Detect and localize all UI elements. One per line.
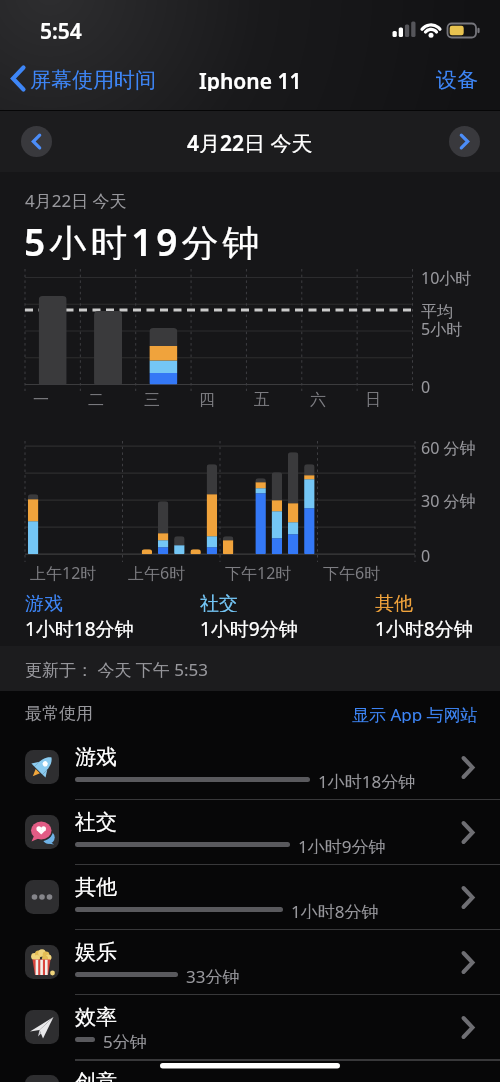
staticText: 5:54 <box>40 17 82 43</box>
staticText: 显示 App 与网站 <box>352 703 478 723</box>
button[interactable]: 游戏 <box>0 735 500 800</box>
staticText: 60 分钟 <box>421 437 476 457</box>
staticText: 其他 <box>75 874 117 898</box>
staticText: 10小时 <box>421 267 472 287</box>
staticText: 5小时 <box>421 318 463 338</box>
button[interactable]: 显示 App 与网站 <box>352 703 478 723</box>
staticText: 平均 <box>421 302 453 322</box>
staticText: 1小时9分钟 <box>200 616 298 638</box>
button[interactable] <box>21 126 52 157</box>
staticText: 二 <box>88 390 104 410</box>
staticText: 社交 <box>200 592 238 612</box>
button[interactable]: 效率 <box>0 995 500 1060</box>
staticText: 1小时8分钟 <box>291 900 379 919</box>
staticText: 设备 <box>436 67 478 91</box>
button[interactable]: 设备 <box>436 67 478 91</box>
staticText: 娱乐 <box>75 939 117 963</box>
staticText: 游戏 <box>25 592 63 612</box>
button[interactable]: 社交 <box>0 800 500 865</box>
staticText: 下午12时 <box>225 562 292 582</box>
staticText: 最常使用 <box>25 703 93 723</box>
button[interactable] <box>449 126 480 157</box>
staticText: 33分钟 <box>186 965 240 984</box>
staticText: 五 <box>254 390 270 410</box>
staticText: 日 <box>365 390 381 410</box>
staticText: 上午6时 <box>128 562 186 582</box>
staticText: 下午6时 <box>323 562 381 582</box>
staticText: 1小时9分钟 <box>298 835 386 854</box>
staticText: 其他 <box>375 592 413 612</box>
staticText: 更新于： 今天 下午 5:53 <box>25 658 208 678</box>
staticText: 1小时8分钟 <box>375 616 473 638</box>
staticText: 4月22日 今天 <box>187 129 313 153</box>
staticText: 1小时18分钟 <box>318 770 416 789</box>
staticText: 创意 <box>75 1069 117 1082</box>
staticText: 六 <box>310 390 326 410</box>
staticText: 5小时19分钟 <box>24 216 264 260</box>
staticText: 0 <box>421 376 431 396</box>
staticText: 4月22日 今天 <box>25 189 127 209</box>
staticText: 屏幕使用时间 <box>30 67 156 91</box>
staticText: 上午12时 <box>30 562 97 582</box>
staticText: Iphone 11 <box>199 67 302 91</box>
staticText: 30 分钟 <box>421 490 476 510</box>
staticText: 三 <box>144 390 160 410</box>
button[interactable]: 娱乐 <box>0 930 500 995</box>
button[interactable]: 其他 <box>0 865 500 930</box>
staticText: 效率 <box>75 1004 117 1028</box>
staticText: 一 <box>33 390 49 410</box>
staticText: 四 <box>199 390 215 410</box>
staticText: 游戏 <box>75 744 117 768</box>
button[interactable] <box>8 60 178 98</box>
staticText: 1小时18分钟 <box>25 616 134 638</box>
staticText: 0 <box>421 545 431 565</box>
staticText: 社交 <box>75 809 117 833</box>
staticText: 5分钟 <box>103 1030 147 1049</box>
